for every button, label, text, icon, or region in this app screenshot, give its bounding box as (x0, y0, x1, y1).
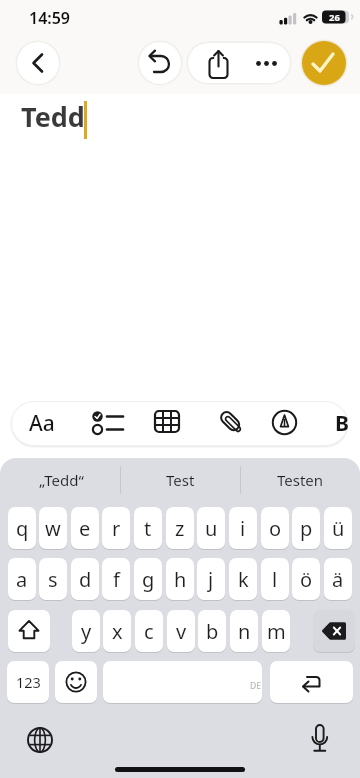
staticText: Tedd (21, 98, 85, 135)
staticText: 26 (329, 11, 340, 24)
button[interactable]: Test (122, 462, 238, 498)
button[interactable]: n (230, 610, 258, 652)
button[interactable]: Testen (242, 462, 358, 498)
button[interactable]: s (39, 558, 67, 600)
staticText: r (112, 515, 121, 542)
button[interactable] (306, 722, 334, 754)
button[interactable]: 123 (7, 661, 49, 703)
staticText: z (175, 515, 185, 542)
staticText: h (174, 566, 187, 593)
staticText: „Tedd“ (39, 470, 84, 490)
staticText: j (208, 566, 214, 593)
button[interactable] (84, 404, 128, 442)
button[interactable] (8, 610, 50, 652)
staticText: ö (300, 566, 313, 593)
button[interactable]: y (72, 610, 100, 652)
staticText: DE (250, 680, 261, 692)
staticText: s (48, 566, 58, 593)
staticText: i (240, 515, 246, 542)
staticText: w (45, 515, 61, 542)
button[interactable]: j (197, 558, 225, 600)
button[interactable] (139, 42, 181, 84)
button[interactable] (103, 661, 262, 703)
staticText: g (142, 566, 155, 593)
button[interactable] (188, 43, 239, 83)
staticText: p (300, 515, 313, 542)
staticText: y (81, 618, 92, 645)
button[interactable]: w (39, 507, 67, 549)
button[interactable] (217, 407, 244, 436)
button[interactable]: e (71, 507, 99, 549)
button[interactable]: o (261, 507, 289, 549)
button[interactable] (270, 661, 353, 703)
button[interactable]: k (229, 558, 257, 600)
staticText: f (113, 566, 120, 593)
staticText: v (176, 618, 187, 645)
staticText: m (267, 618, 286, 645)
staticText: Test (166, 470, 195, 490)
button[interactable]: q (8, 507, 36, 549)
staticText: a (16, 566, 28, 593)
staticText: n (238, 618, 251, 645)
staticText: d (79, 566, 92, 593)
staticText: ü (332, 515, 345, 542)
staticText: u (205, 515, 218, 542)
button[interactable]: r (102, 507, 130, 549)
button[interactable]: Aa (26, 404, 58, 442)
staticText: Testen (277, 470, 324, 490)
staticText: 14:59 (29, 7, 71, 29)
button[interactable]: g (134, 558, 162, 600)
button[interactable]: z (166, 507, 194, 549)
button[interactable] (154, 410, 180, 434)
button[interactable]: ö (292, 558, 320, 600)
staticText: b (206, 618, 219, 645)
staticText: 123 (16, 672, 41, 692)
button[interactable]: m (262, 610, 290, 652)
button[interactable]: b (198, 610, 226, 652)
button[interactable]: t (134, 507, 162, 549)
button[interactable]: i (229, 507, 257, 549)
button[interactable] (17, 42, 59, 84)
button[interactable] (239, 43, 290, 83)
staticText: l (272, 566, 278, 593)
button[interactable]: „Tedd“ (2, 462, 120, 498)
button[interactable]: d (71, 558, 99, 600)
staticText: k (238, 566, 249, 593)
button[interactable]: ü (324, 507, 352, 549)
button[interactable]: x (103, 610, 131, 652)
button[interactable]: l (261, 558, 289, 600)
button[interactable]: B (331, 404, 353, 442)
button[interactable] (25, 725, 55, 755)
button[interactable]: c (135, 610, 163, 652)
button[interactable]: v (167, 610, 195, 652)
button[interactable]: u (197, 507, 225, 549)
button[interactable]: a (8, 558, 36, 600)
staticText: x (112, 618, 123, 645)
button[interactable]: f (102, 558, 130, 600)
staticText: B (335, 409, 349, 438)
staticText: c (144, 618, 154, 645)
staticText: o (269, 515, 282, 542)
button[interactable] (271, 409, 298, 436)
button[interactable] (55, 661, 97, 703)
staticText: t (144, 515, 152, 542)
button[interactable] (302, 41, 346, 85)
staticText: ä (332, 566, 344, 593)
button[interactable] (313, 610, 355, 652)
staticText: Aa (29, 409, 55, 438)
button[interactable]: h (166, 558, 194, 600)
staticText: q (16, 515, 29, 542)
button[interactable]: p (292, 507, 320, 549)
staticText: e (79, 515, 91, 542)
button[interactable]: ä (324, 558, 352, 600)
